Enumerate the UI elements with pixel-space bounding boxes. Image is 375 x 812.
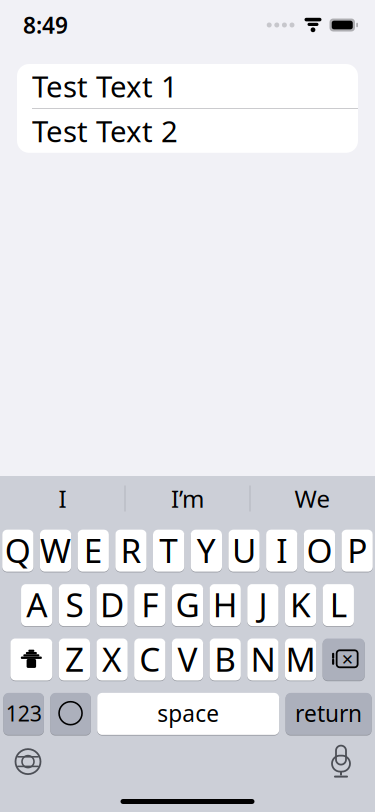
- staticText: V: [177, 637, 197, 681]
- button[interactable]: C: [134, 638, 165, 681]
- button[interactable]: U: [228, 529, 260, 572]
- staticText: 123: [6, 699, 42, 727]
- button[interactable]: R: [115, 529, 147, 572]
- button[interactable]: S: [59, 583, 90, 627]
- staticText: Y: [197, 528, 216, 572]
- staticText: return: [295, 698, 362, 728]
- staticText: L: [330, 582, 347, 627]
- button[interactable]: T: [153, 529, 184, 572]
- button[interactable]: H: [209, 583, 241, 627]
- button[interactable]: N: [247, 638, 278, 681]
- button[interactable]: Q: [2, 529, 33, 572]
- button[interactable]: J: [247, 583, 278, 627]
- button[interactable]: D: [96, 583, 128, 627]
- staticText: We: [294, 483, 330, 514]
- staticText: K: [290, 582, 311, 627]
- button[interactable]: Test Text 2: [17, 109, 358, 153]
- staticText: R: [120, 528, 141, 572]
- staticText: space: [157, 698, 219, 728]
- button[interactable]: I’m: [125, 476, 249, 521]
- button[interactable]: A: [21, 583, 52, 627]
- staticText: U: [232, 528, 256, 572]
- staticText: I: [58, 483, 66, 514]
- staticText: ×: [342, 645, 353, 672]
- staticText: O: [306, 528, 332, 572]
- staticText: E: [84, 528, 103, 572]
- staticText: N: [250, 637, 275, 681]
- staticText: Q: [5, 528, 31, 572]
- staticText: J: [258, 582, 267, 627]
- button[interactable]: Z: [59, 638, 90, 681]
- button[interactable]: V: [172, 638, 203, 681]
- staticText: F: [141, 582, 158, 627]
- button[interactable]: We: [250, 476, 374, 521]
- staticText: W: [40, 528, 71, 572]
- staticText: A: [26, 582, 47, 627]
- staticText: I’m: [171, 483, 204, 514]
- button[interactable]: I: [266, 529, 297, 572]
- button[interactable]: W: [40, 529, 71, 572]
- button[interactable]: Test Text 1: [17, 64, 358, 108]
- button[interactable]: Emoji: [50, 692, 91, 736]
- button[interactable]: P: [341, 529, 373, 572]
- button[interactable]: G: [172, 583, 203, 627]
- staticText: S: [65, 582, 83, 627]
- button[interactable]: F: [134, 583, 165, 627]
- button[interactable]: M: [285, 638, 316, 681]
- button[interactable]: L: [323, 583, 354, 627]
- button[interactable]: I: [0, 476, 124, 521]
- staticText: B: [214, 637, 236, 681]
- button[interactable]: K: [285, 583, 316, 627]
- staticText: H: [213, 582, 238, 627]
- button[interactable]: space: [97, 692, 279, 736]
- staticText: Z: [65, 637, 84, 681]
- button[interactable]: 123: [3, 692, 44, 736]
- button[interactable]: Next keyboard: [6, 742, 50, 782]
- staticText: G: [175, 582, 199, 627]
- button[interactable]: E: [78, 529, 109, 572]
- staticText: P: [347, 528, 367, 572]
- button[interactable]: O: [304, 529, 335, 572]
- button[interactable]: X: [96, 638, 128, 681]
- staticText: D: [100, 582, 124, 627]
- button[interactable]: Delete: [323, 638, 365, 681]
- staticText: I: [276, 528, 287, 572]
- button[interactable]: Y: [191, 529, 222, 572]
- staticText: M: [286, 637, 316, 681]
- staticText: T: [159, 528, 178, 572]
- staticText: Test Text 2: [32, 111, 178, 150]
- staticText: Test Text 1: [32, 66, 178, 105]
- button[interactable]: B: [209, 638, 241, 681]
- staticText: C: [139, 637, 160, 681]
- button[interactable]: Dictate: [319, 742, 363, 782]
- button[interactable]: return: [286, 692, 372, 736]
- staticText: 8:49: [23, 10, 68, 40]
- button[interactable]: Shift: [10, 638, 52, 681]
- staticText: X: [102, 637, 122, 681]
